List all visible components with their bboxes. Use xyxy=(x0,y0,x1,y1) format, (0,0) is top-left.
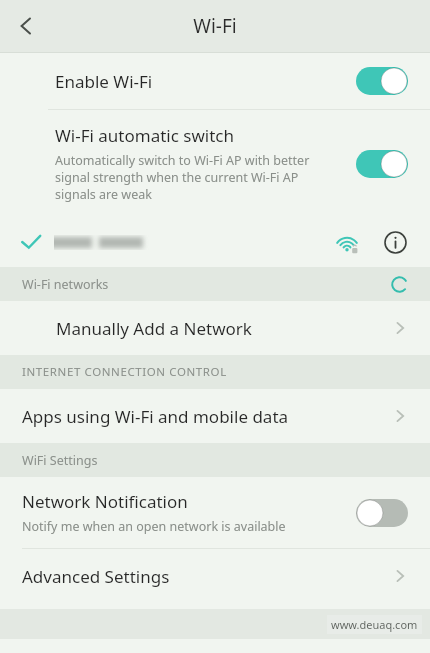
button[interactable]: Toggle on xyxy=(356,66,408,96)
staticText: Network Notification xyxy=(22,490,188,513)
button[interactable]: Apps using Wi-Fi and mobile data xyxy=(0,389,430,443)
button[interactable]: Toggle on xyxy=(356,149,408,179)
staticText: Wi-Fi networks xyxy=(22,276,109,293)
button[interactable]: Network details xyxy=(378,225,412,259)
staticText: INTERNET CONNECTION CONTROL xyxy=(22,364,227,380)
staticText: WiFi Settings xyxy=(22,452,98,469)
staticText: Manually Add a Network xyxy=(56,317,392,340)
button[interactable]: Toggle off xyxy=(356,498,408,528)
staticText: Wi-Fi automatic switch xyxy=(55,124,234,147)
staticText: Notify me when an open network is availa… xyxy=(22,518,286,535)
button[interactable]: Network Notification xyxy=(0,477,430,548)
staticText: Automatically switch to Wi-Fi AP with be… xyxy=(55,152,342,203)
staticText: Enable Wi-Fi xyxy=(55,70,356,93)
button[interactable]: Advanced Settings xyxy=(0,549,430,603)
staticText: Advanced Settings xyxy=(22,565,392,588)
staticText: Apps using Wi-Fi and mobile data xyxy=(22,405,392,428)
button[interactable]: Wi-Fi signal xyxy=(0,217,430,267)
staticText: Wi-Fi xyxy=(193,13,237,39)
button[interactable]: Enable Wi-Fi xyxy=(0,53,430,109)
button[interactable]: Back xyxy=(0,0,52,52)
staticText: www.deuaq.com xyxy=(331,617,418,632)
other: Wi-Fi signal xyxy=(334,229,360,255)
button[interactable]: Wi-Fi automatic switch xyxy=(0,110,430,217)
button[interactable]: Manually Add a Network xyxy=(0,301,430,355)
